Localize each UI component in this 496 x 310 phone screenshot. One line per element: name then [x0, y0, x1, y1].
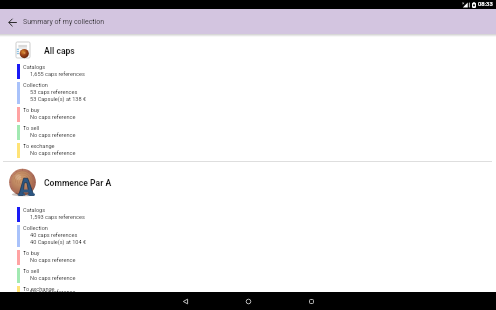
staticText: No caps reference [30, 114, 76, 121]
button[interactable]: Recent apps [302, 292, 320, 310]
button[interactable]: Back [0, 9, 25, 34]
button[interactable]: Commence Par A [0, 162, 496, 292]
staticText: Collection [23, 225, 48, 232]
staticText: Summary of my collection [23, 18, 105, 26]
staticText: To sell [23, 125, 40, 132]
staticText: All caps [44, 46, 75, 56]
button[interactable]: Home [239, 292, 257, 310]
button[interactable]: All caps [0, 37, 496, 161]
staticText: No caps reference [30, 289, 76, 296]
staticText: No caps reference [30, 132, 76, 139]
staticText: No caps reference [30, 257, 76, 264]
staticText: 53 Capsule(s) at 138 € [30, 96, 87, 103]
button[interactable]: Back [176, 292, 194, 310]
staticText: No caps reference [30, 275, 76, 282]
staticText: 08:33 [478, 1, 493, 8]
staticText: To sell [23, 268, 40, 275]
staticText: 40 caps references [30, 232, 78, 239]
staticText: Catalogs [23, 64, 46, 71]
staticText: No caps reference [30, 150, 76, 157]
staticText: Catalogs [23, 207, 46, 214]
staticText: Collection [23, 82, 48, 89]
staticText: Commence Par A [44, 178, 112, 188]
staticText: To exchange [23, 143, 55, 150]
staticText: 1,655 caps references [30, 71, 85, 78]
staticText: To exchange [23, 286, 55, 293]
staticText: To buy [23, 107, 40, 114]
staticText: 1,593 caps references [30, 214, 85, 221]
staticText: To buy [23, 250, 40, 257]
staticText: 53 caps references [30, 89, 78, 96]
staticText: 40 Capsule(s) at 104 € [30, 239, 87, 246]
